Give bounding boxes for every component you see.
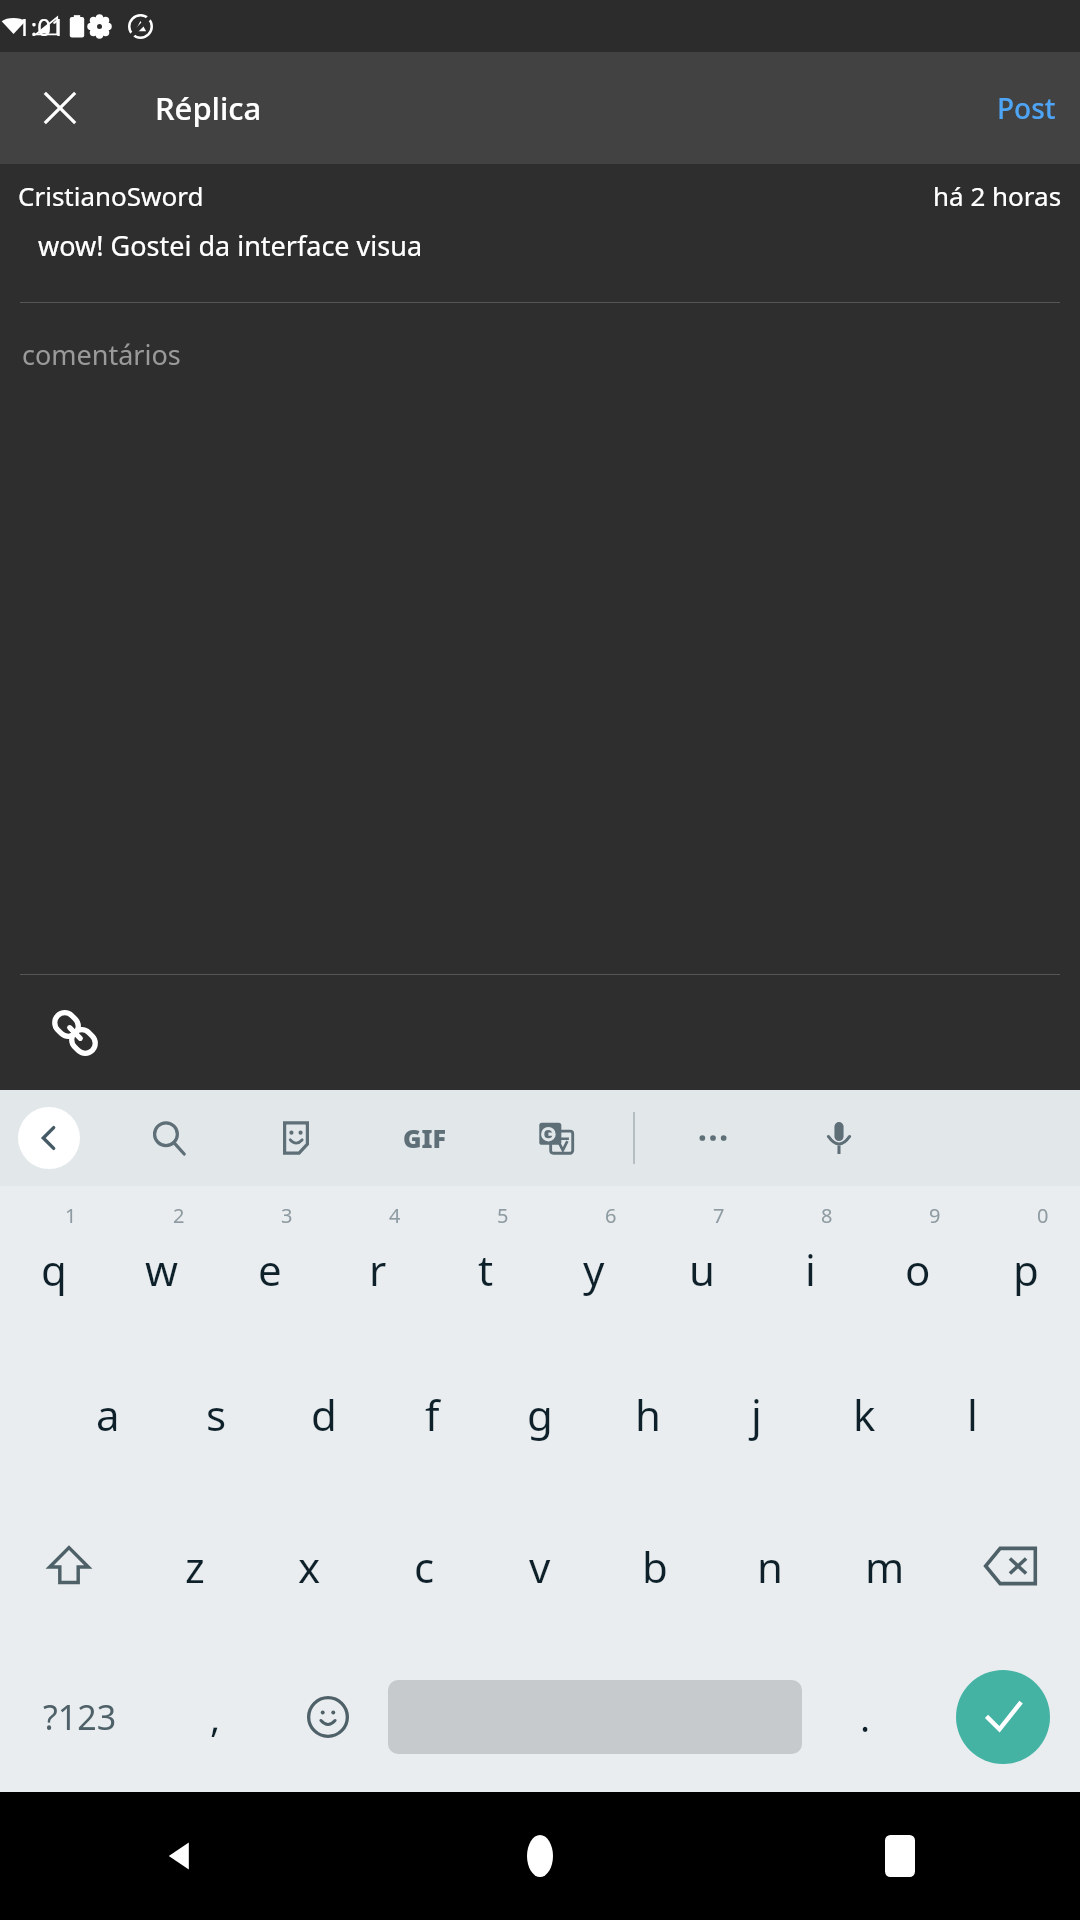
button[interactable]: 0: [972, 1186, 1080, 1338]
button[interactable]: g: [486, 1338, 594, 1490]
button[interactable]: Attach: [30, 988, 120, 1078]
button[interactable]: l: [918, 1338, 1026, 1490]
staticText: f: [425, 1386, 440, 1443]
button[interactable]: k: [810, 1338, 918, 1490]
button[interactable]: Translate: [522, 1104, 590, 1172]
button[interactable]: GIF: [390, 1104, 458, 1172]
staticText: Réplica: [155, 87, 262, 129]
button[interactable]: c: [367, 1490, 482, 1642]
button[interactable]: More: [679, 1104, 747, 1172]
button[interactable]: h: [594, 1338, 702, 1490]
button[interactable]: 1: [0, 1186, 108, 1338]
staticText: Post: [997, 89, 1056, 127]
staticText: i: [805, 1241, 816, 1298]
staticText: 7: [713, 1202, 725, 1229]
staticText: 9: [929, 1202, 941, 1229]
button[interactable]: Enter: [956, 1670, 1050, 1764]
staticText: l: [967, 1386, 978, 1443]
button[interactable]: ?123: [0, 1642, 160, 1792]
staticText: r: [369, 1241, 387, 1298]
button[interactable]: Backspace: [942, 1490, 1080, 1642]
staticText: 1:01: [17, 10, 65, 43]
staticText: o: [905, 1241, 931, 1298]
staticText: e: [258, 1241, 282, 1298]
button[interactable]: Recent apps: [720, 1792, 1080, 1920]
button[interactable]: comentários: [0, 303, 1080, 974]
staticText: 8: [821, 1202, 833, 1229]
staticText: v: [529, 1538, 551, 1595]
staticText: j: [751, 1386, 762, 1443]
button[interactable]: 2: [108, 1186, 216, 1338]
staticText: z: [185, 1538, 205, 1595]
staticText: 0: [1037, 1202, 1049, 1229]
button[interactable]: Voice input: [805, 1104, 873, 1172]
staticText: q: [41, 1241, 67, 1298]
staticText: 3: [281, 1202, 293, 1229]
button[interactable]: 3: [216, 1186, 324, 1338]
staticText: s: [206, 1386, 227, 1443]
staticText: wow! Gostei da interface visua: [38, 227, 423, 264]
button[interactable]: Stickers: [262, 1104, 330, 1172]
staticText: comentários: [22, 336, 181, 373]
button[interactable]: s: [162, 1338, 270, 1490]
staticText: p: [1013, 1241, 1039, 1298]
button[interactable]: Search: [135, 1104, 203, 1172]
staticText: c: [414, 1538, 435, 1595]
button[interactable]: 4: [324, 1186, 432, 1338]
staticText: k: [853, 1386, 876, 1443]
button[interactable]: 5: [432, 1186, 540, 1338]
button[interactable]: m: [827, 1490, 942, 1642]
button[interactable]: n: [712, 1490, 827, 1642]
staticText: u: [689, 1241, 715, 1298]
button[interactable]: Home: [360, 1792, 720, 1920]
button[interactable]: 6: [540, 1186, 648, 1338]
staticText: 5: [497, 1202, 509, 1229]
button[interactable]: b: [597, 1490, 712, 1642]
staticText: 2: [173, 1202, 185, 1229]
staticText: y: [583, 1241, 605, 1298]
staticText: x: [298, 1538, 321, 1595]
button[interactable]: j: [702, 1338, 810, 1490]
button[interactable]: d: [270, 1338, 378, 1490]
staticText: ,: [210, 1691, 221, 1743]
staticText: ?123: [43, 1694, 117, 1740]
button[interactable]: .: [805, 1642, 925, 1792]
staticText: m: [865, 1538, 905, 1595]
button[interactable]: x: [252, 1490, 367, 1642]
button[interactable]: a: [54, 1338, 162, 1490]
button[interactable]: z: [138, 1490, 252, 1642]
staticText: CristianoSword: [18, 178, 933, 213]
button[interactable]: ,: [160, 1642, 270, 1792]
staticText: t: [478, 1241, 494, 1298]
staticText: n: [757, 1538, 783, 1595]
button[interactable]: Back: [18, 1107, 80, 1169]
button[interactable]: v: [482, 1490, 597, 1642]
staticText: g: [527, 1386, 553, 1443]
button[interactable]: 7: [648, 1186, 756, 1338]
staticText: a: [96, 1386, 120, 1443]
staticText: .: [860, 1691, 871, 1743]
staticText: 6: [605, 1202, 617, 1229]
button[interactable]: Post: [973, 75, 1080, 141]
button[interactable]: f: [378, 1338, 486, 1490]
button[interactable]: Close: [14, 62, 106, 154]
staticText: w: [145, 1241, 179, 1298]
staticText: há 2 horas: [933, 178, 1062, 213]
button[interactable]: Emoji: [270, 1642, 385, 1792]
button[interactable]: Shift: [0, 1490, 138, 1642]
staticText: 1: [65, 1202, 77, 1229]
staticText: b: [642, 1538, 668, 1595]
staticText: 4: [389, 1202, 401, 1229]
button[interactable]: 9: [864, 1186, 972, 1338]
button[interactable]: 8: [756, 1186, 864, 1338]
staticText: GIF: [403, 1121, 446, 1155]
staticText: h: [635, 1386, 661, 1443]
button[interactable]: Back: [0, 1792, 360, 1920]
staticText: d: [311, 1386, 337, 1443]
